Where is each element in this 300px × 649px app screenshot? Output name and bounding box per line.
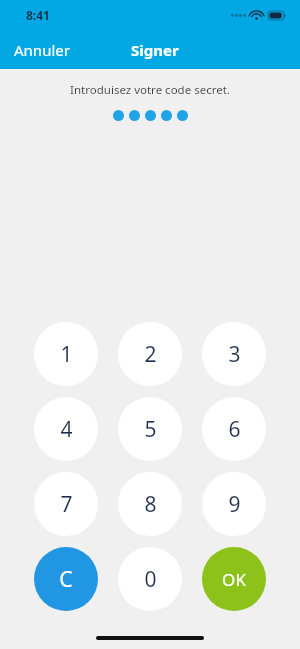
button[interactable]: 3 — [202, 322, 266, 386]
staticText: 4 — [60, 415, 73, 444]
staticText: Signer — [131, 40, 179, 60]
staticText: Annuler — [14, 40, 70, 60]
button[interactable]: C — [34, 547, 98, 611]
staticText: 5 — [144, 415, 157, 444]
staticText: C — [59, 565, 73, 594]
button[interactable]: 2 — [118, 322, 182, 386]
button[interactable]: 4 — [34, 397, 98, 461]
button[interactable]: Signer — [131, 34, 179, 66]
staticText: 8:41 — [26, 7, 50, 23]
button[interactable]: 6 — [202, 397, 266, 461]
staticText: 6 — [228, 415, 241, 444]
staticText: 3 — [228, 340, 241, 369]
button[interactable]: 5 — [118, 397, 182, 461]
staticText: OK — [222, 568, 246, 591]
button[interactable]: Annuler — [0, 34, 84, 66]
staticText: 7 — [60, 490, 73, 519]
staticText: 8 — [144, 490, 157, 519]
button[interactable]: 7 — [34, 472, 98, 536]
staticText: 1 — [60, 340, 73, 369]
button[interactable]: 9 — [202, 472, 266, 536]
staticText: Introduisez votre code secret. — [70, 82, 230, 98]
button[interactable]: 0 — [118, 547, 182, 611]
button[interactable]: 8 — [118, 472, 182, 536]
staticText: 0 — [144, 565, 157, 594]
staticText: 2 — [144, 340, 157, 369]
button[interactable]: OK — [202, 547, 266, 611]
button[interactable]: 1 — [34, 322, 98, 386]
staticText: 9 — [228, 490, 241, 519]
